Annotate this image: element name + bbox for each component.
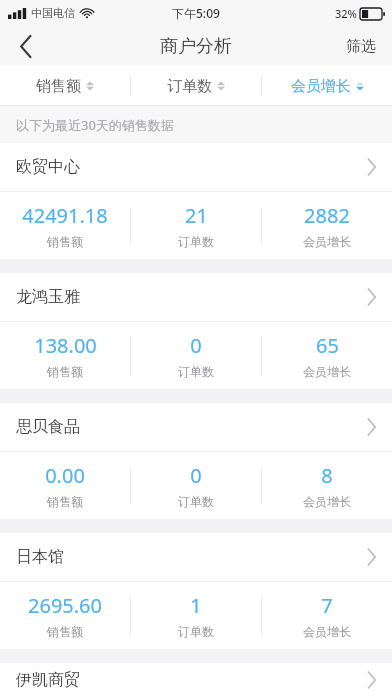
staticText: 2882 <box>304 202 350 229</box>
button[interactable]: 思贝食品 <box>0 403 392 451</box>
staticText: 0 <box>190 332 202 359</box>
staticText: 销售额 <box>47 364 83 379</box>
staticText: 会员增长 <box>303 234 351 249</box>
staticText: 32% <box>335 6 357 21</box>
staticText: 中国电信 <box>31 6 75 20</box>
staticText: 会员增长 <box>303 494 351 509</box>
button[interactable]: 伊凯商贸 <box>0 663 392 696</box>
staticText: 订单数 <box>178 234 214 249</box>
staticText: 销售额 <box>47 494 83 509</box>
staticText: 会员增长 <box>303 624 351 639</box>
staticText: 21 <box>185 202 208 229</box>
button[interactable]: 日本馆 <box>0 533 392 581</box>
staticText: 订单数 <box>178 624 214 639</box>
staticText: 0.00 <box>45 462 85 489</box>
staticText: 7 <box>321 592 333 619</box>
staticText: 会员增长 <box>291 77 351 96</box>
staticText: 商户分析 <box>160 35 232 58</box>
staticText: 伊凯商贸 <box>16 670 80 690</box>
button[interactable]: 筛选 <box>330 26 392 66</box>
staticText: 筛选 <box>346 37 376 56</box>
staticText: 订单数 <box>178 494 214 509</box>
staticText: 订单数 <box>178 364 214 379</box>
staticText: 下午5:09 <box>172 5 220 21</box>
staticText: 订单数 <box>167 77 212 96</box>
staticText: 日本馆 <box>16 547 64 567</box>
button[interactable]: 销售额 <box>0 66 130 106</box>
staticText: 会员增长 <box>303 364 351 379</box>
staticText: 以下为最近30天的销售数据 <box>16 116 174 134</box>
staticText: 销售额 <box>47 624 83 639</box>
staticText: 138.00 <box>34 332 97 359</box>
staticText: 欧贸中心 <box>16 157 80 177</box>
staticText: 销售额 <box>47 234 83 249</box>
button[interactable]: 龙鸿玉雅 <box>0 273 392 321</box>
staticText: 8 <box>321 462 333 489</box>
staticText: 龙鸿玉雅 <box>16 287 80 307</box>
staticText: 0 <box>190 462 202 489</box>
staticText: 2695.60 <box>28 592 102 619</box>
staticText: 思贝食品 <box>16 417 80 437</box>
staticText: 1 <box>190 592 202 619</box>
staticText: 销售额 <box>36 77 81 96</box>
button[interactable]: 会员增长 <box>262 66 392 106</box>
staticText: 42491.18 <box>22 202 108 229</box>
staticText: 65 <box>316 332 339 359</box>
button[interactable]: Back <box>0 26 52 66</box>
button[interactable]: 欧贸中心 <box>0 143 392 191</box>
button[interactable]: 订单数 <box>131 66 261 106</box>
